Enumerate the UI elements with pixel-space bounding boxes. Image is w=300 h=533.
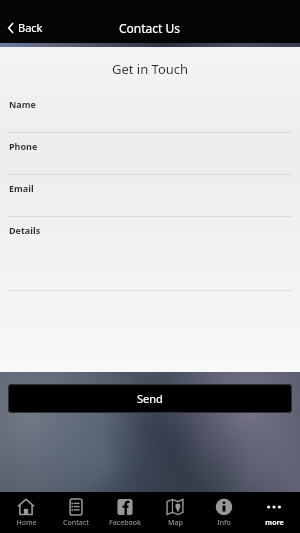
button[interactable]: Facebook (102, 492, 148, 528)
staticText: Info (217, 518, 231, 528)
button[interactable]: Send (8, 384, 292, 413)
button[interactable]: Back (0, 16, 53, 39)
staticText: Contact (63, 518, 89, 528)
button[interactable]: Details (0, 217, 300, 291)
staticText: Back (18, 20, 43, 35)
staticText: more (265, 518, 284, 528)
button[interactable]: Name (0, 91, 300, 133)
staticText: Send (137, 391, 163, 406)
staticText: Get in Touch (0, 60, 300, 78)
staticText: Phone (9, 140, 38, 152)
staticText: Contact Us (119, 20, 181, 36)
staticText: Email (9, 182, 34, 194)
button[interactable]: Contact (53, 492, 99, 528)
button[interactable]: Home (3, 492, 49, 528)
staticText: Map (168, 518, 183, 528)
staticText: Name (9, 98, 36, 110)
button[interactable]: Phone (0, 133, 300, 175)
button[interactable]: more (251, 492, 297, 528)
staticText: Facebook (109, 518, 141, 528)
staticText: Details (9, 224, 41, 236)
button[interactable]: Map (152, 492, 198, 528)
button[interactable]: Info (201, 492, 247, 528)
staticText: Home (16, 518, 37, 528)
button[interactable]: Email (0, 175, 300, 217)
